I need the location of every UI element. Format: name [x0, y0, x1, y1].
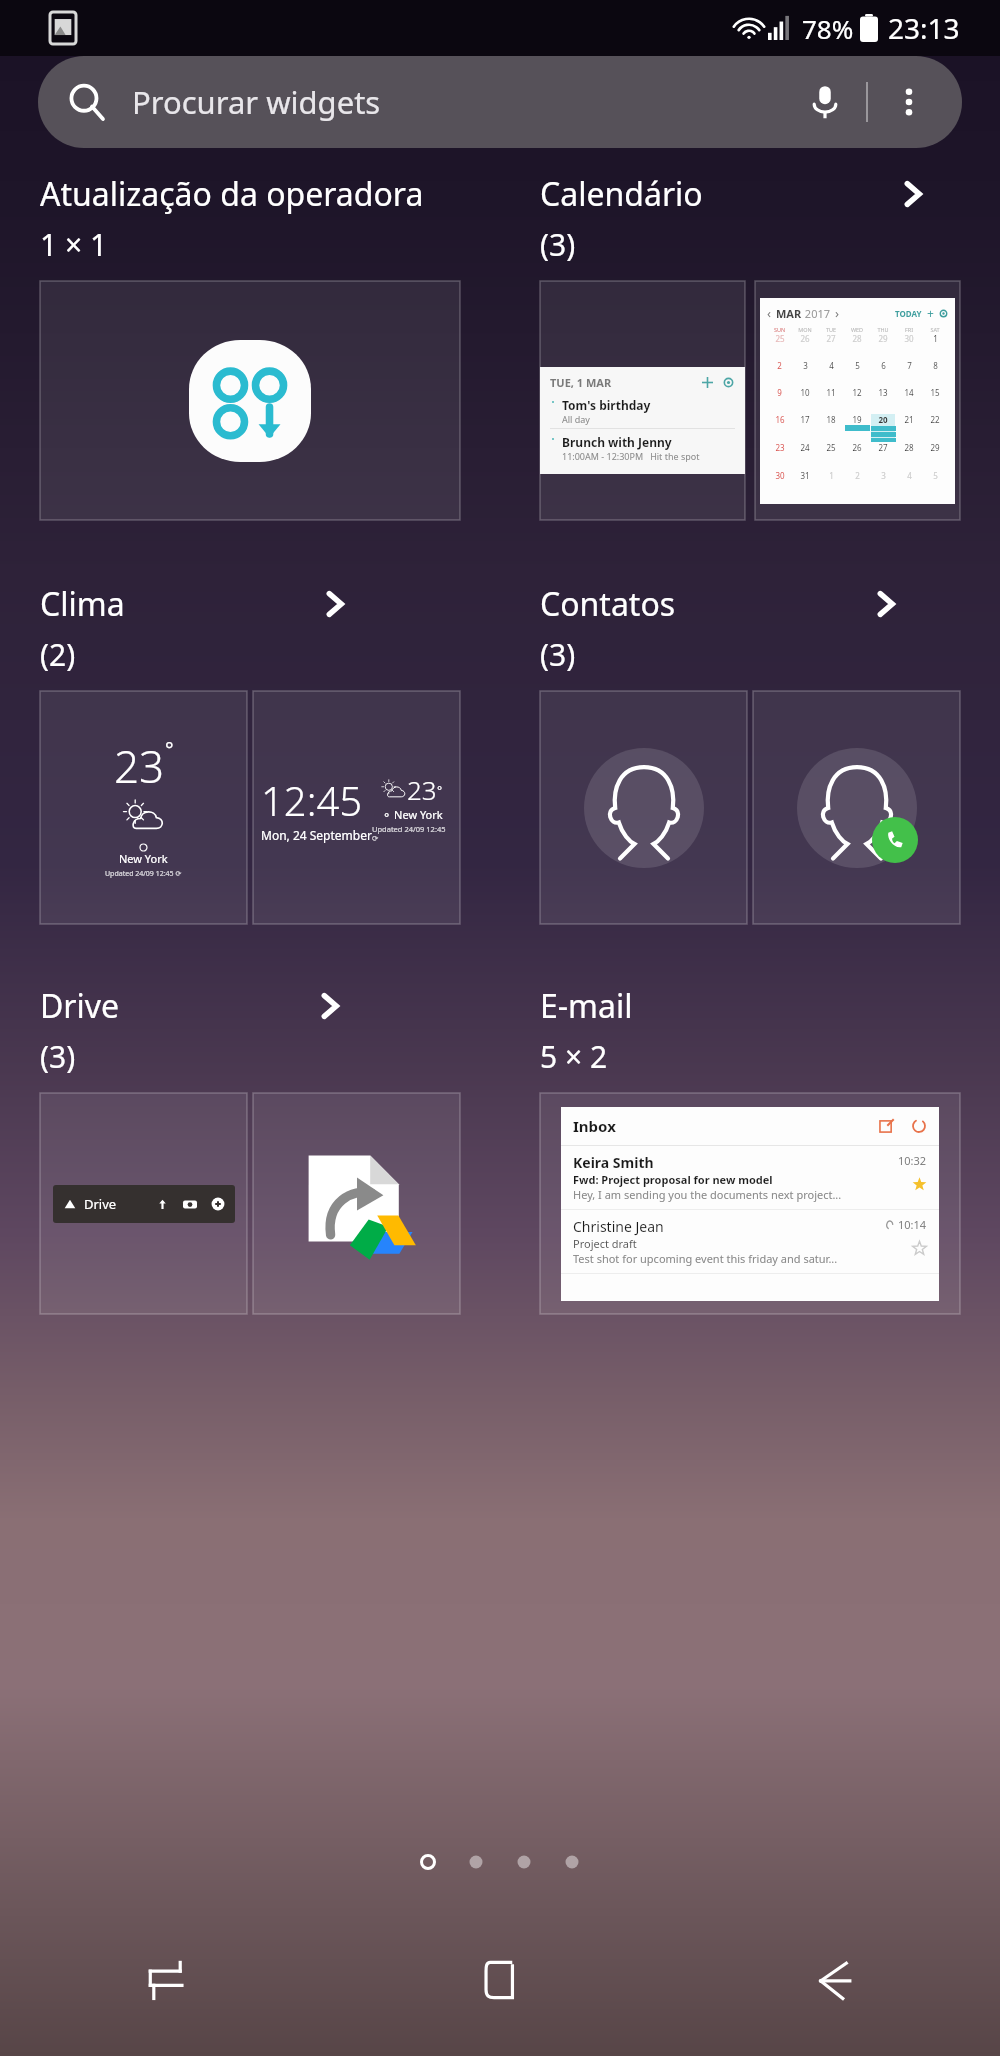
staticText: Contatos [540, 582, 676, 626]
staticText: 12:45 [261, 773, 363, 827]
staticText: Drive [40, 984, 120, 1028]
staticText: 4 [829, 360, 834, 371]
staticText: 4 [907, 470, 912, 481]
staticText: ° [165, 736, 174, 763]
staticText: 13 [878, 387, 888, 398]
staticText: 9 [777, 387, 782, 398]
staticText: 27 [826, 333, 836, 344]
staticText: Inbox [573, 1116, 616, 1136]
button[interactable]: Início [334, 1932, 667, 2028]
staticText: 10:32 [898, 1153, 927, 1168]
staticText: 3 [803, 360, 808, 371]
button[interactable]: Drive [40, 1093, 247, 1314]
staticText: 12 [852, 387, 862, 398]
button[interactable]: Procurar widgets [38, 56, 962, 148]
staticText: 78% [802, 11, 854, 46]
button[interactable]: Pesquisa por voz [802, 79, 848, 125]
staticText: Fwd: Project proposal for new model [573, 1172, 773, 1187]
button[interactable]: Recentes [0, 1932, 334, 2028]
staticText: 10:14 [898, 1217, 927, 1232]
staticText: WED [844, 326, 870, 333]
button[interactable]: Página 3 [514, 1852, 534, 1872]
staticText: 11:00AM - 12:30PM Hit the spot [562, 450, 700, 462]
staticText: Drive [84, 1195, 117, 1213]
staticText: 20 [878, 414, 888, 425]
staticText: 26 [800, 333, 810, 344]
staticText: 15 [930, 387, 940, 398]
staticText: 5 [855, 360, 860, 371]
staticText: 1 [829, 470, 834, 481]
staticText: New York [119, 851, 168, 866]
button[interactable]: 23 [40, 691, 247, 924]
staticText: Test shot for upcoming event this friday… [573, 1251, 838, 1266]
staticText: Atualização da operadora [40, 172, 424, 216]
button[interactable]: Ver mais Contatos [864, 582, 908, 626]
staticText: SAT [922, 326, 948, 333]
button[interactable]: ‹ [755, 281, 960, 520]
staticText: 23:13 [888, 9, 960, 47]
button[interactable]: Inbox [540, 1093, 960, 1314]
staticText: ⚬ New York [382, 807, 443, 822]
staticText: 25 [775, 333, 785, 344]
staticText: 29 [878, 333, 888, 344]
button[interactable]: 12:45 [253, 691, 460, 924]
staticText: MON [792, 326, 818, 333]
staticText: › [835, 304, 840, 322]
staticText: 11 [826, 387, 836, 398]
staticText: 2 [777, 360, 782, 371]
button[interactable] [540, 691, 747, 924]
staticText: 21 [904, 414, 914, 425]
staticText: Brunch with Jenny [562, 434, 672, 450]
button[interactable] [40, 281, 460, 520]
button[interactable] [753, 691, 960, 924]
staticText: 7 [907, 360, 912, 371]
staticText: ‹ [767, 304, 772, 322]
staticText: 24 [800, 442, 810, 453]
staticText: 3 [881, 470, 886, 481]
button[interactable]: TUE, 1 MAR [540, 281, 745, 520]
staticText: 10 [800, 387, 810, 398]
button[interactable] [253, 1093, 460, 1314]
staticText: TUE [818, 326, 844, 333]
staticText: 14 [904, 387, 914, 398]
staticText: 16 [775, 414, 785, 425]
staticText: 29 [930, 442, 940, 453]
staticText: TODAY [895, 308, 922, 319]
staticText: 8 [933, 360, 938, 371]
staticText: E-mail [540, 984, 633, 1028]
staticText: 30 [775, 470, 785, 481]
staticText: 25 [826, 442, 836, 453]
staticText: + [927, 305, 934, 321]
staticText: 23 [114, 736, 165, 796]
staticText: Procurar widgets [132, 81, 381, 123]
button[interactable]: Página 4 [562, 1852, 582, 1872]
staticText: 6 [881, 360, 886, 371]
staticText: 26 [852, 442, 862, 453]
staticText: MAR [776, 306, 802, 321]
button[interactable]: Ver mais Drive [308, 984, 352, 1028]
staticText: 1 [933, 333, 938, 344]
staticText: 23 [775, 442, 785, 453]
staticText: Clima [40, 582, 125, 626]
staticText: 19 [852, 414, 862, 425]
staticText: Updated 24/09 12:45 ⟳ [105, 869, 182, 879]
staticText: 1 × 1 [40, 224, 108, 265]
button[interactable]: Voltar [667, 1932, 1000, 2028]
staticText: 5 [933, 470, 938, 481]
button[interactable]: Ver mais Calendário [891, 172, 935, 216]
staticText: 30 [904, 333, 914, 344]
button[interactable]: Página 1 [418, 1852, 438, 1872]
button[interactable]: Mais opções [886, 79, 932, 125]
staticText: Project draft [573, 1236, 637, 1251]
staticText: 28 [904, 442, 914, 453]
staticText: 31 [800, 470, 810, 481]
staticText: Calendário [540, 172, 703, 216]
button[interactable]: Ver mais Clima [313, 582, 357, 626]
staticText: SUN [767, 326, 792, 333]
button[interactable]: Página 2 [466, 1852, 486, 1872]
staticText: Tom's birthday [562, 397, 651, 413]
staticText: All day [562, 413, 590, 425]
staticText: 27 [878, 442, 888, 453]
staticText: 23 [407, 772, 437, 807]
staticText: 28 [852, 333, 862, 344]
